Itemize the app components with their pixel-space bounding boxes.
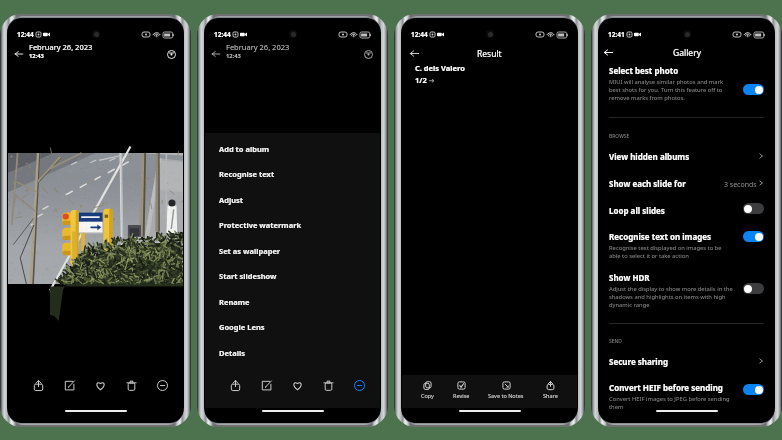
staticText: Google Lens [219, 322, 265, 332]
staticText: Secure sharing [609, 356, 669, 367]
button[interactable]: Edit [57, 378, 81, 392]
staticText: Show HDR [609, 272, 650, 283]
staticText: Add to album [219, 144, 270, 154]
staticText: 12:44 [214, 30, 231, 39]
staticText: Set as wallpaper [219, 246, 281, 256]
staticText: Select best photo [609, 65, 679, 76]
button[interactable]: Favourite [88, 378, 112, 392]
staticText: Protective watermark [219, 220, 302, 230]
button[interactable]: Back [406, 45, 423, 62]
staticText: MIUI will analyse similar photos and mar… [609, 78, 724, 86]
button[interactable]: Toggle off [743, 203, 764, 214]
button[interactable]: Protective watermark [205, 212, 380, 237]
staticText: SEND [609, 338, 622, 345]
staticText: 1/2 [415, 75, 427, 85]
staticText: Copy [421, 392, 434, 399]
staticText: them [609, 403, 624, 411]
staticText: Details [219, 348, 245, 358]
button[interactable]: Loop all slides [599, 201, 774, 223]
staticText: remove marks from photos. [609, 94, 685, 102]
staticText: Recognise text on images [609, 231, 712, 242]
button[interactable]: View hidden albums [599, 147, 774, 169]
button[interactable]: Show HDR [599, 268, 774, 306]
staticText: 3 seconds [724, 180, 757, 190]
button[interactable]: Delete [119, 378, 143, 392]
staticText: Convert HEIF before sending [609, 382, 723, 393]
button[interactable]: Toggle on [743, 84, 764, 95]
staticText: View hidden albums [609, 151, 690, 162]
staticText: Save to Notes [488, 392, 524, 399]
button[interactable]: Start slideshow [205, 263, 380, 288]
staticText: able to select it or take action [609, 252, 689, 260]
button[interactable]: Favourite [285, 378, 309, 392]
staticText: February 26, 2023 [29, 42, 93, 52]
staticText: 12:43 [29, 52, 44, 58]
button[interactable]: Set as wallpaper [205, 238, 380, 263]
button[interactable]: Save to Notes [486, 383, 526, 401]
button[interactable]: More [150, 378, 174, 392]
button[interactable]: Details [205, 340, 380, 365]
staticText: Gallery [673, 47, 701, 59]
button[interactable]: Copy [419, 383, 436, 401]
staticText: Share [543, 392, 558, 399]
staticText: Adjust the display to show more details … [609, 285, 733, 293]
staticText: Convert HEIF images to JPEG before sendi… [609, 395, 730, 403]
staticText: best shots for you. Turn this feature of… [609, 86, 723, 94]
staticText: dynamic range [609, 301, 650, 309]
button[interactable]: Edit [254, 378, 278, 392]
button[interactable]: Add to album [205, 136, 380, 161]
button[interactable]: More [347, 378, 371, 392]
staticText: 12:44 [411, 30, 428, 39]
staticText: Show each slide for [609, 178, 686, 189]
button[interactable]: Back [209, 47, 223, 61]
button[interactable]: Share [26, 378, 50, 392]
button[interactable]: Share [541, 383, 560, 401]
staticText: Result [477, 48, 502, 60]
staticText: 12:43 [226, 52, 241, 58]
button[interactable]: Convert HEIF before sending [599, 378, 774, 409]
button[interactable]: Delete [316, 378, 340, 392]
staticText: Recognise text displayed on images to be [609, 244, 722, 252]
button[interactable]: Toggle off [743, 283, 764, 294]
button[interactable]: Info [164, 47, 178, 61]
button[interactable]: Recognise text on images [599, 227, 774, 258]
button[interactable]: Back [599, 43, 774, 62]
button[interactable]: Rename [205, 289, 380, 314]
staticText: 12:44 [17, 30, 34, 39]
staticText: shadows and highlights on items with hig… [609, 293, 726, 301]
staticText: Revise [453, 392, 470, 399]
button[interactable]: Adjust [205, 187, 380, 212]
button[interactable]: Info [361, 47, 375, 61]
staticText: Loop all slides [609, 205, 665, 216]
staticText: Rename [219, 297, 250, 307]
button[interactable]: Select best photo [599, 61, 774, 99]
staticText: Start slideshow [219, 271, 277, 281]
staticText: Adjust [219, 195, 244, 205]
staticText: C. dels Valero [415, 63, 465, 73]
staticText: Recognise text [219, 169, 275, 179]
button[interactable]: Show each slide for [599, 174, 774, 196]
button[interactable]: Recognise text [205, 161, 380, 186]
button[interactable]: Toggle on [743, 231, 764, 242]
button[interactable]: Secure sharing [599, 352, 774, 374]
button[interactable]: Revise [451, 383, 472, 401]
staticText: February 26, 2023 [226, 42, 290, 52]
button[interactable]: Toggle on [743, 384, 764, 395]
button[interactable]: Google Lens [205, 314, 380, 339]
button[interactable]: Back [12, 47, 26, 61]
staticText: BROWSE [609, 133, 630, 140]
staticText: 12:41 [608, 30, 625, 39]
button[interactable]: Share [223, 378, 247, 392]
